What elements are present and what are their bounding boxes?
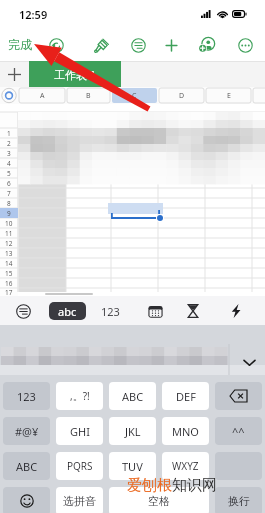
staticText: 11 <box>5 229 13 238</box>
button[interactable]: More <box>234 34 256 56</box>
staticText: abc <box>58 304 77 319</box>
button[interactable]: WXYZ <box>162 452 209 480</box>
staticText: 9 <box>7 209 11 218</box>
button[interactable]: abc <box>49 302 86 320</box>
staticText: 8 <box>7 199 11 208</box>
button[interactable]: 123 <box>3 382 50 410</box>
button[interactable]: #@¥ <box>3 417 50 445</box>
button[interactable]: 选拼音 <box>56 487 103 513</box>
button[interactable]: Format <box>127 34 149 56</box>
button[interactable]: Quick actions <box>225 300 247 322</box>
staticText: #@¥ <box>15 424 39 439</box>
button[interactable]: A <box>18 87 66 104</box>
button[interactable]: Backspace <box>215 382 262 410</box>
button[interactable]: ,。?! <box>56 382 103 410</box>
staticText: C <box>132 91 137 101</box>
staticText: PQRS <box>67 459 93 473</box>
staticText: ABC <box>122 389 144 404</box>
staticText: 空格 <box>148 494 170 508</box>
button[interactable]: ABC <box>109 382 156 410</box>
staticText: 123 <box>17 389 36 404</box>
staticText: 123 <box>101 304 120 319</box>
staticText: 4 <box>7 159 11 168</box>
staticText: 1 <box>7 129 11 138</box>
staticText: 爱刨根 <box>127 476 172 495</box>
button[interactable]: GHI <box>56 417 103 445</box>
staticText: 12 <box>5 239 13 248</box>
staticText: 完成 <box>8 37 32 52</box>
staticText: DEF <box>176 389 196 404</box>
button[interactable]: 完成 <box>8 37 32 52</box>
staticText: 选拼音 <box>63 494 96 508</box>
button[interactable]: Time <box>182 300 204 322</box>
button[interactable]: 空格 <box>109 487 209 513</box>
button[interactable]: C <box>111 87 158 104</box>
staticText: 6 <box>7 179 11 188</box>
staticText: 10 <box>5 219 13 228</box>
button[interactable]: MNO <box>162 417 209 445</box>
button[interactable]: B <box>66 87 111 104</box>
button[interactable]: JKL <box>109 417 156 445</box>
staticText: WXYZ <box>172 459 199 473</box>
button[interactable]: DEF <box>162 382 209 410</box>
staticText: 7 <box>7 189 11 198</box>
staticText: 2 <box>7 139 11 148</box>
button[interactable]: TUV <box>109 452 156 480</box>
staticText: 5 <box>7 169 11 178</box>
staticText: 3 <box>7 149 11 158</box>
staticText: ,。?! <box>70 389 90 403</box>
button[interactable]: Format painter <box>91 34 113 56</box>
staticText: 工作表 1 <box>54 67 97 82</box>
staticText: MNO <box>172 424 199 439</box>
button[interactable]: Hide keyboard <box>238 351 260 373</box>
staticText: 13 <box>5 249 13 258</box>
staticText: 换行 <box>228 494 250 508</box>
button[interactable]: Keyboard menu <box>12 300 34 322</box>
button[interactable]: ^^ <box>215 417 262 445</box>
staticText: E <box>227 91 231 101</box>
staticText: GHI <box>70 424 90 439</box>
button[interactable]: Emoji <box>3 487 50 513</box>
button[interactable]: Date <box>144 300 166 322</box>
staticText: A <box>40 91 45 101</box>
button[interactable]: Share <box>196 34 218 56</box>
button[interactable]: PQRS <box>56 452 103 480</box>
staticText: 14 <box>5 259 13 268</box>
staticText: 15 <box>5 269 13 278</box>
staticText: ABC <box>16 459 38 474</box>
staticText: D <box>179 91 185 101</box>
button[interactable]: ABC <box>3 452 50 480</box>
staticText: B <box>86 91 91 101</box>
button[interactable]: D <box>158 87 205 104</box>
staticText: 知识网 <box>172 476 217 495</box>
button[interactable]: E <box>205 87 252 104</box>
staticText: TUV <box>122 459 143 474</box>
button[interactable]: Add sheet <box>0 61 29 87</box>
staticText: JKL <box>125 424 141 439</box>
staticText: 12:59 <box>19 7 48 22</box>
button[interactable]: 工作表 1 <box>29 61 121 87</box>
button[interactable]: Undo <box>45 34 67 56</box>
staticText: 16 <box>5 279 13 288</box>
staticText: 17 <box>5 288 13 296</box>
button[interactable]: 123 <box>96 302 124 320</box>
button[interactable]: 换行 <box>215 487 262 513</box>
button[interactable]: Insert <box>160 34 182 56</box>
staticText: ^^ <box>232 424 245 439</box>
